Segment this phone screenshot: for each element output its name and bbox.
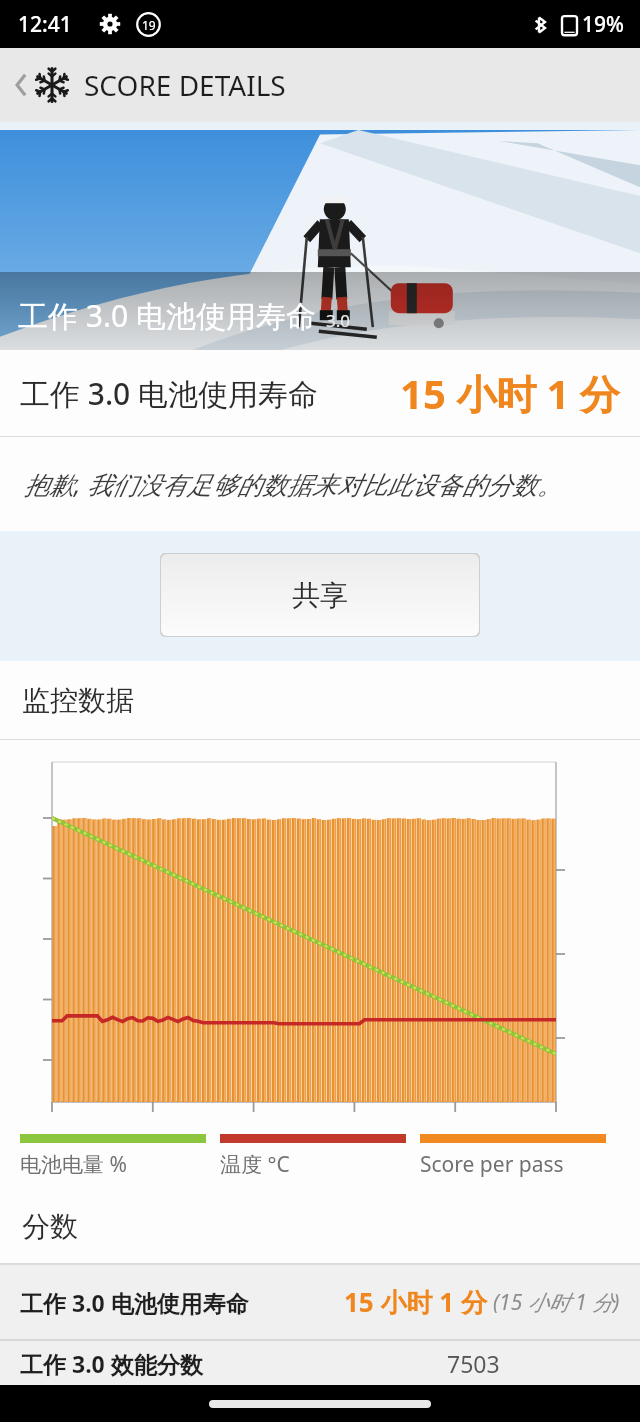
staticText: 工作 3.0 电池使用寿命 [20, 1287, 249, 1318]
button[interactable]: 共享 [160, 553, 480, 637]
staticText: 共享 [292, 578, 348, 613]
staticText: 工作 3.0 电池使用寿命 [18, 295, 316, 336]
staticText: 7503 [447, 1348, 500, 1379]
staticText: 3.0 [326, 309, 351, 332]
button[interactable]: 工作 3.0 电池使用寿命 [20, 1265, 620, 1339]
staticText: 温度 °C [220, 1150, 290, 1179]
staticText: 抱歉, 我们没有足够的数据来对比此设备的分数。 [24, 467, 562, 501]
button[interactable]: Home [209, 1400, 431, 1408]
staticText: 15 小时 1 分 [344, 1284, 487, 1320]
staticText: 监控数据 [22, 683, 134, 718]
staticText: 19% [582, 10, 624, 39]
staticText: 分数 [22, 1209, 78, 1244]
staticText: 19 [142, 17, 156, 33]
staticText: 15 小时 1 分 [400, 366, 620, 421]
staticText: (15 小时 1 分) [493, 1288, 620, 1317]
staticText: 12:41 [18, 10, 72, 39]
staticText: 工作 3.0 电池使用寿命 [20, 373, 319, 414]
staticText: Score per pass [420, 1150, 564, 1179]
button[interactable]: 工作 3.0 效能分数 [20, 1341, 620, 1385]
staticText: 电池电量 % [20, 1150, 127, 1179]
staticText: SCORE DETAILS [84, 66, 286, 104]
button[interactable]: SCORE DETAILS [0, 48, 640, 122]
button[interactable]: 工作 3.0 电池使用寿命 [0, 130, 640, 350]
staticText: 工作 3.0 效能分数 [20, 1348, 203, 1379]
